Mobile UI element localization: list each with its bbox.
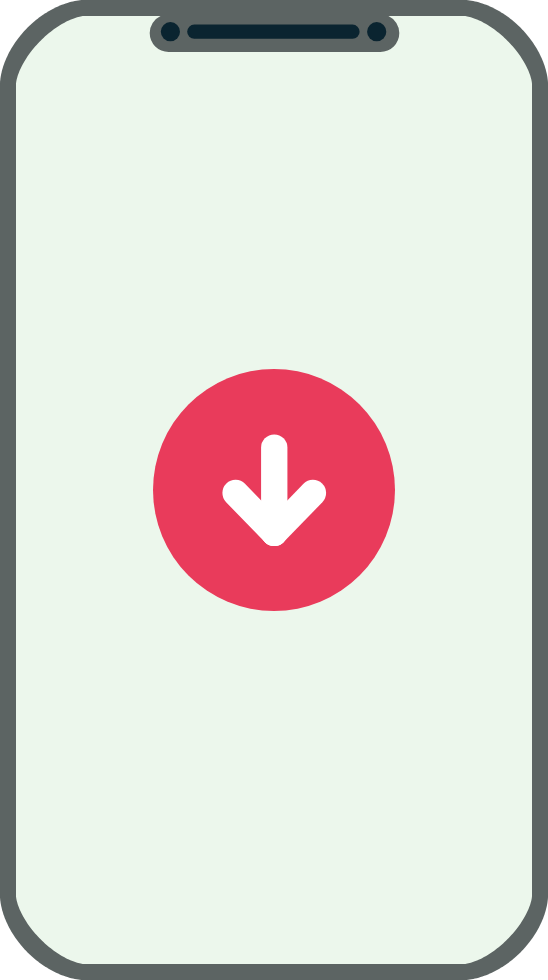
button[interactable]: Download xyxy=(153,369,395,611)
